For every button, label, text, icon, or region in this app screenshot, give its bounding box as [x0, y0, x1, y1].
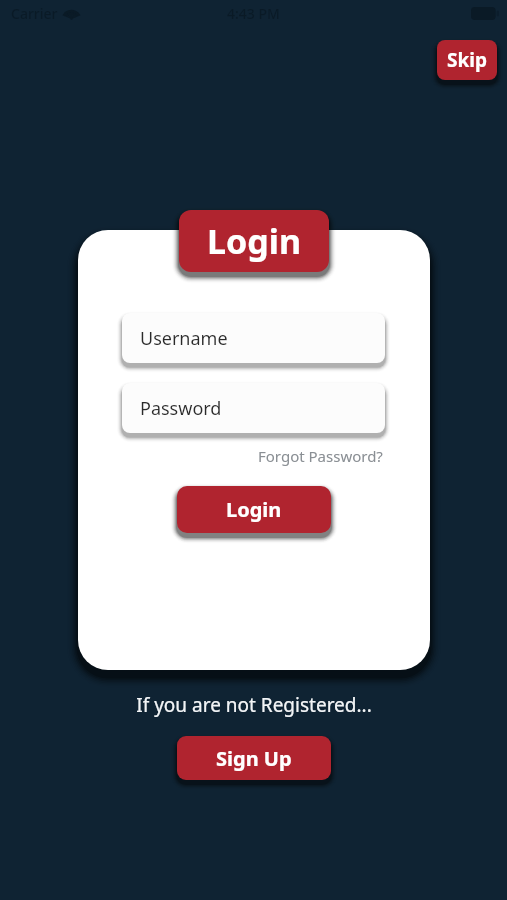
- staticText: Sign Up: [216, 745, 292, 772]
- staticText: Login: [226, 496, 282, 523]
- staticText: Carrier: [11, 4, 58, 23]
- button[interactable]: Login: [179, 210, 329, 272]
- staticText: If you are not Registered...: [136, 692, 372, 718]
- button[interactable]: Sign Up: [177, 736, 331, 780]
- staticText: Skip: [447, 47, 487, 73]
- button[interactable]: Skip: [437, 40, 497, 80]
- staticText: 4:43 PM: [227, 4, 280, 23]
- staticText: Login: [207, 218, 302, 264]
- staticText: Password: [140, 396, 222, 421]
- button[interactable]: Forgot Password?: [256, 444, 385, 468]
- button[interactable]: Password: [122, 383, 385, 433]
- staticText: Username: [140, 326, 228, 351]
- button[interactable]: Login: [177, 486, 331, 533]
- button[interactable]: Username: [122, 313, 385, 363]
- staticText: Forgot Password?: [258, 446, 383, 466]
